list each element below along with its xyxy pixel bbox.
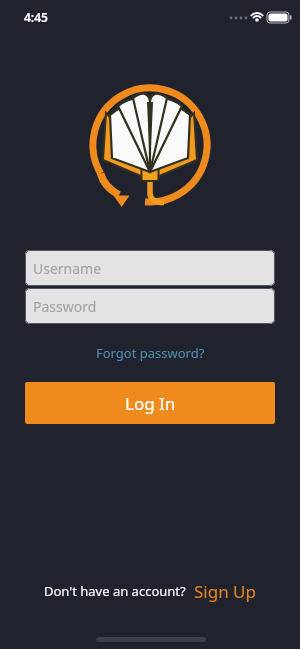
staticText: Log In: [125, 392, 176, 415]
button[interactable]: Password: [25, 288, 275, 324]
staticText: 4:45: [24, 9, 48, 25]
staticText: Don't have an account?: [44, 582, 186, 600]
button[interactable]: Forgot password?: [96, 344, 205, 362]
button[interactable]: Username: [25, 250, 275, 286]
button[interactable]: Sign Up: [194, 580, 256, 603]
button[interactable]: Log In: [25, 382, 275, 424]
staticText: Password: [33, 297, 97, 316]
staticText: Username: [33, 259, 102, 278]
